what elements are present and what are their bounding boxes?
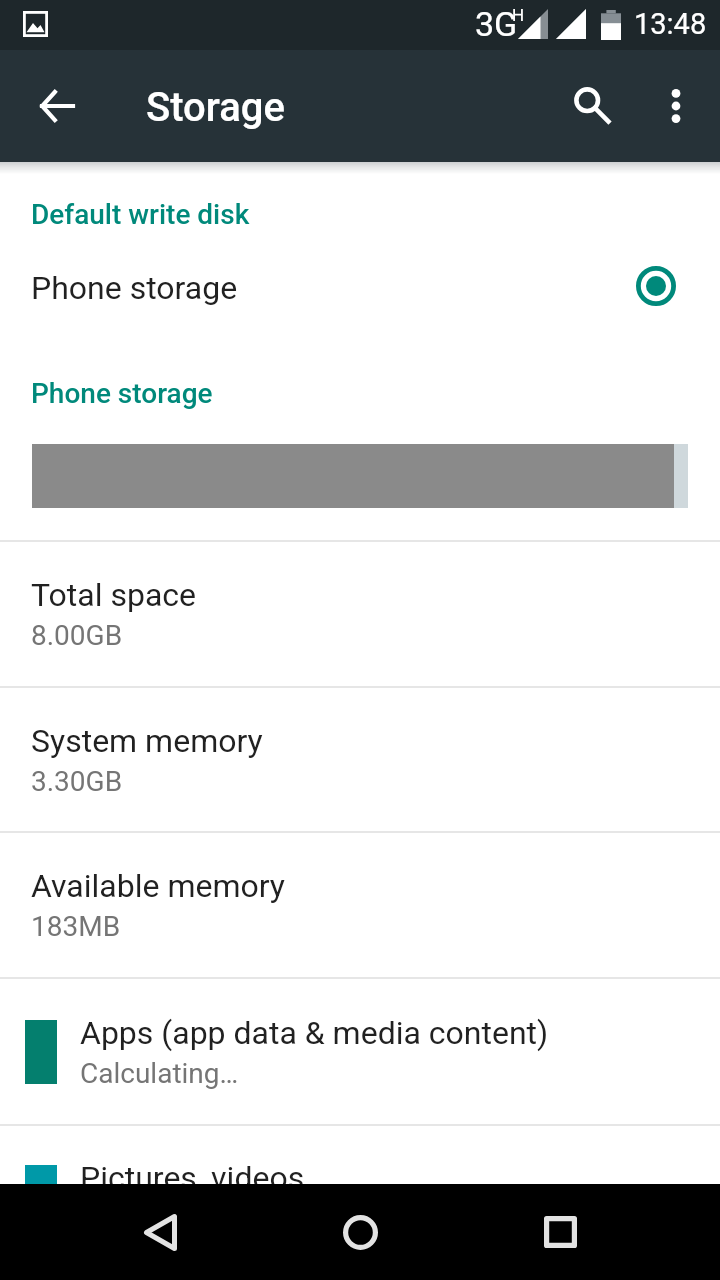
button[interactable]: Home [312,1184,408,1280]
button[interactable]: Search [536,50,632,162]
staticText: Storage [146,84,285,131]
staticText: H [512,5,525,25]
staticText: 8.00GB [31,619,123,652]
staticText: Total space [31,576,196,614]
button[interactable]: System memory [0,688,720,831]
staticText: System memory [31,722,263,760]
button[interactable]: Back [112,1184,208,1280]
staticText: 183MB [31,910,121,943]
button[interactable]: Available memory [0,833,720,977]
button[interactable]: Recent apps [512,1184,608,1280]
button[interactable]: Apps (app data & media content) [0,979,720,1124]
staticText: Phone storage [31,377,213,410]
staticText: Calculating… [80,1057,239,1090]
staticText: 1.50GB [80,1202,172,1235]
button[interactable]: Pictures, videos [0,1126,720,1268]
button[interactable]: Navigate up [0,50,112,162]
staticText: Apps (app data & media content) [80,1014,549,1052]
staticText: 3.30GB [31,765,123,798]
staticText: 13:48 [634,7,707,41]
staticText: Default write disk [31,198,250,231]
staticText: 3G [475,4,515,44]
button[interactable]: Phone storage [0,255,720,321]
staticText: Available memory [31,867,285,905]
button[interactable]: Total space [0,542,720,686]
staticText: Phone storage [31,269,636,307]
staticText: Pictures, videos [80,1159,305,1197]
button[interactable]: More options [632,50,720,162]
